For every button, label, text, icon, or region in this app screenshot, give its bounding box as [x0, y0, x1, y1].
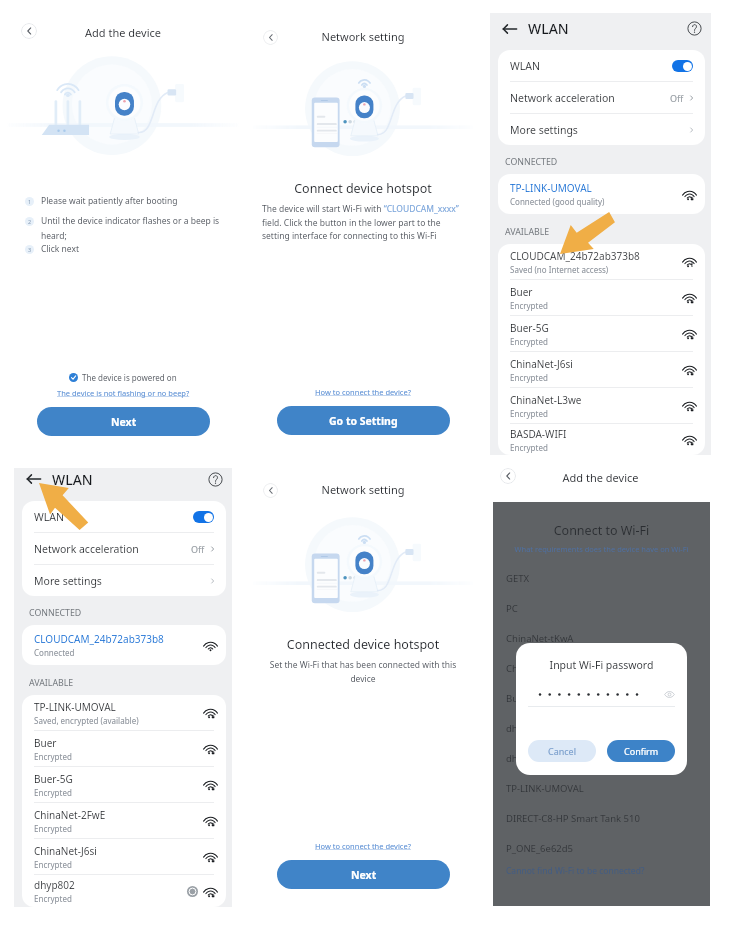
staticText: Input Wi-Fi password [516, 658, 687, 672]
staticText: Buer-5G [506, 692, 543, 705]
staticText: Next [351, 868, 377, 882]
button[interactable]: TP-LINK-UMOVAL [22, 695, 226, 730]
staticText: More settings [510, 123, 578, 137]
button[interactable]: dhyp802 [493, 713, 710, 743]
button[interactable]: WLAN [22, 501, 226, 532]
button[interactable]: Show password [664, 689, 675, 700]
staticText: WLAN [510, 59, 540, 73]
staticText: Encrypted [510, 442, 548, 453]
staticText: Connected device hotspot [246, 636, 480, 653]
staticText: Connect to Wi-Fi [493, 522, 710, 539]
button[interactable]: BASDA-WIFI [498, 424, 705, 455]
staticText: CLOUDCAM_24b72ab373b8 [510, 249, 640, 263]
staticText: Encrypted [34, 893, 72, 904]
button[interactable]: CLOUDCAM_24b72ab373b8 [498, 244, 705, 279]
button[interactable]: TP-LINK-UMOVAL [498, 174, 705, 214]
button[interactable]: Buer-5G [493, 683, 710, 713]
staticText: Encrypted [34, 751, 72, 762]
staticText: The device is powered on [82, 372, 177, 383]
staticText: More settings [34, 574, 102, 588]
staticText: Saved (no Internet access) [510, 264, 609, 275]
button[interactable]: Back [263, 483, 278, 498]
staticText: ChinaNet-tKwA [506, 632, 574, 645]
button[interactable]: TP-LINK-UMOVAL [493, 773, 710, 803]
button[interactable]: Next [37, 407, 210, 436]
button[interactable]: dhyp802 [22, 875, 226, 907]
staticText: TP-LINK-UMOVAL [34, 700, 116, 714]
button[interactable]: ChinaNet-6bnN [493, 653, 710, 683]
button[interactable]: DIRECT-C8-HP Smart Tank 510 [493, 803, 710, 833]
staticText: WLAN [34, 510, 64, 524]
button[interactable]: Network acceleration [498, 82, 705, 113]
button[interactable]: Cancel [528, 740, 596, 762]
button[interactable]: dhyp_5G [493, 743, 710, 773]
staticText: Off [670, 92, 684, 104]
button[interactable]: Buer-5G [22, 767, 226, 802]
staticText: Encrypted [510, 300, 548, 311]
button[interactable]: How to connect the device? [315, 841, 411, 851]
staticText: 1 [28, 198, 32, 205]
staticText: Encrypted [510, 408, 548, 419]
button[interactable]: Buer-5G [498, 316, 705, 351]
staticText: AVAILABLE [29, 677, 74, 689]
button[interactable]: Confirm [607, 740, 675, 762]
button[interactable]: Next [277, 860, 450, 889]
staticText: dhyp802 [506, 722, 545, 735]
staticText: Until the device indicator flashes or a … [41, 215, 230, 241]
staticText: What requirements does the device have o… [493, 544, 710, 554]
button[interactable]: Back [21, 23, 37, 39]
staticText: Network setting [246, 482, 480, 497]
staticText: Click next [41, 243, 80, 255]
staticText: Encrypted [34, 823, 72, 834]
staticText: dhyp802 [34, 878, 75, 892]
button[interactable]: ChinaNet-tKwA [493, 623, 710, 653]
button[interactable]: The device is not flashing or no beep? [57, 388, 190, 398]
button[interactable]: Back [501, 20, 519, 38]
staticText: AVAILABLE [505, 226, 550, 238]
staticText: ChinaNet-2FwE [34, 808, 106, 822]
button[interactable]: CLOUDCAM_24b72ab373b8 [22, 625, 226, 665]
button[interactable]: Help [687, 21, 702, 36]
button[interactable]: ChinaNet-2FwE [22, 803, 226, 838]
staticText: Encrypted [510, 336, 548, 347]
button[interactable]: Back [500, 468, 516, 484]
button[interactable]: Go to Setting [277, 406, 450, 435]
staticText: Encrypted [510, 372, 548, 383]
staticText: BASDA-WIFI [510, 427, 567, 441]
staticText: ChinaNet-L3we [510, 393, 582, 407]
button[interactable]: Cannot find Wi-Fi to be connected? [506, 865, 645, 877]
button[interactable]: Back [263, 30, 278, 45]
staticText: dhyp_5G [506, 752, 545, 765]
button[interactable]: Help [208, 472, 223, 487]
button[interactable]: More settings [22, 565, 226, 596]
staticText: Add the device [0, 25, 246, 40]
button[interactable]: P_ONE_6e62d5 [493, 833, 710, 863]
staticText: Buer [510, 285, 533, 299]
button[interactable]: ChinaNet-L3we [498, 388, 705, 423]
staticText: Please wait patiently after booting [41, 195, 178, 207]
staticText: WLAN [528, 19, 569, 38]
button[interactable]: ChinaNet-J6si [22, 839, 226, 874]
button[interactable]: More settings [498, 114, 705, 145]
staticText: WLAN [52, 470, 93, 489]
button[interactable]: ChinaNet-J6si [498, 352, 705, 387]
button[interactable]: The device is powered on [68, 371, 178, 384]
staticText: Connect device hotspot [246, 180, 480, 197]
staticText: GETX [506, 572, 530, 585]
staticText: P_ONE_6e62d5 [506, 842, 574, 855]
staticText: Add the device [490, 470, 711, 485]
button[interactable]: Buer [22, 731, 226, 766]
button[interactable]: Back [25, 470, 43, 488]
button[interactable]: WLAN [498, 50, 705, 81]
staticText: Cancel [548, 745, 577, 757]
staticText: Saved, encrypted (available) [34, 715, 139, 726]
button[interactable]: How to connect the device? [315, 387, 411, 397]
button[interactable]: Buer [498, 280, 705, 315]
staticText: CLOUDCAM_24b72ab373b8 [34, 632, 164, 646]
staticText: Confirm [624, 745, 659, 757]
button[interactable]: Network acceleration [22, 533, 226, 564]
staticText: Set the Wi-Fi that has been connected wi… [268, 659, 458, 684]
staticText: 2 [28, 218, 32, 225]
